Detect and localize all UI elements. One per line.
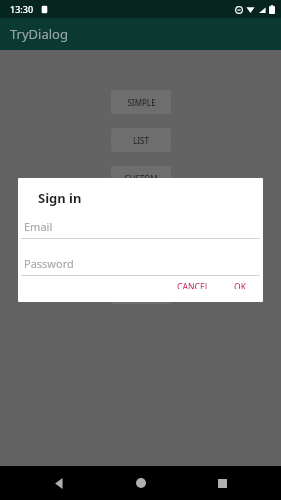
button[interactable]: CANCEL [171, 276, 216, 294]
button[interactable]: Password [21, 256, 260, 276]
button[interactable]: Back [37, 466, 81, 500]
staticText: OK [234, 281, 247, 289]
button[interactable]: Email [21, 219, 260, 239]
staticText: SIMPLE [127, 97, 156, 108]
button[interactable]: LIST [111, 128, 171, 152]
staticText: CUSTOM [124, 173, 158, 184]
button[interactable]: SIMPLE [111, 90, 171, 114]
staticText: Email [24, 219, 53, 234]
button[interactable]: BUTTON [111, 280, 171, 304]
staticText: CANCEL [177, 281, 210, 289]
button[interactable]: Home [119, 466, 163, 500]
staticText: LIST [133, 135, 149, 146]
button[interactable]: CUSTOM [111, 166, 171, 190]
button[interactable]: Recent apps [200, 466, 244, 500]
staticText: Sign in [38, 189, 82, 207]
staticText: Password [24, 256, 74, 271]
button[interactable]: OK [228, 276, 253, 294]
staticText: 13:30 [10, 3, 34, 15]
staticText: TryDialog [10, 25, 68, 43]
